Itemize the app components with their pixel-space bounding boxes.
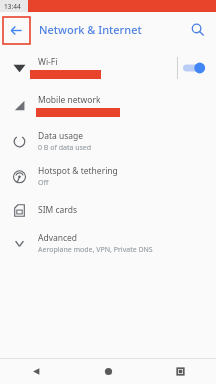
button[interactable]: Mobile network	[0, 86, 216, 124]
staticText: 13:44	[4, 2, 21, 11]
button[interactable]: Advanced	[0, 226, 216, 261]
button[interactable]: Home	[72, 359, 144, 384]
button[interactable]: Back	[3, 17, 30, 44]
button[interactable]: Hotspot & tethering	[0, 159, 216, 194]
button[interactable]: Wi-Fi toggle	[178, 54, 212, 82]
staticText: SIM cards	[38, 204, 77, 216]
button[interactable]: SIM cards	[0, 194, 216, 226]
staticText: Wi-Fi	[38, 56, 58, 68]
button[interactable]: Back	[0, 359, 72, 384]
staticText: Data usage	[38, 130, 84, 142]
button[interactable]: Search	[186, 18, 208, 40]
button[interactable]: Wi-Fi	[0, 49, 216, 86]
staticText: Network & Internet	[39, 22, 142, 37]
staticText: Mobile network	[38, 94, 101, 106]
staticText: 0 B of data used	[38, 143, 92, 153]
button[interactable]: Recent apps	[144, 359, 216, 384]
staticText: Advanced	[38, 232, 78, 244]
staticText: Aeroplane mode, VPN, Private DNS	[38, 245, 153, 255]
staticText: Hotspot & tethering	[38, 165, 118, 177]
button[interactable]: Data usage	[0, 124, 216, 159]
staticText: Off	[38, 178, 49, 188]
